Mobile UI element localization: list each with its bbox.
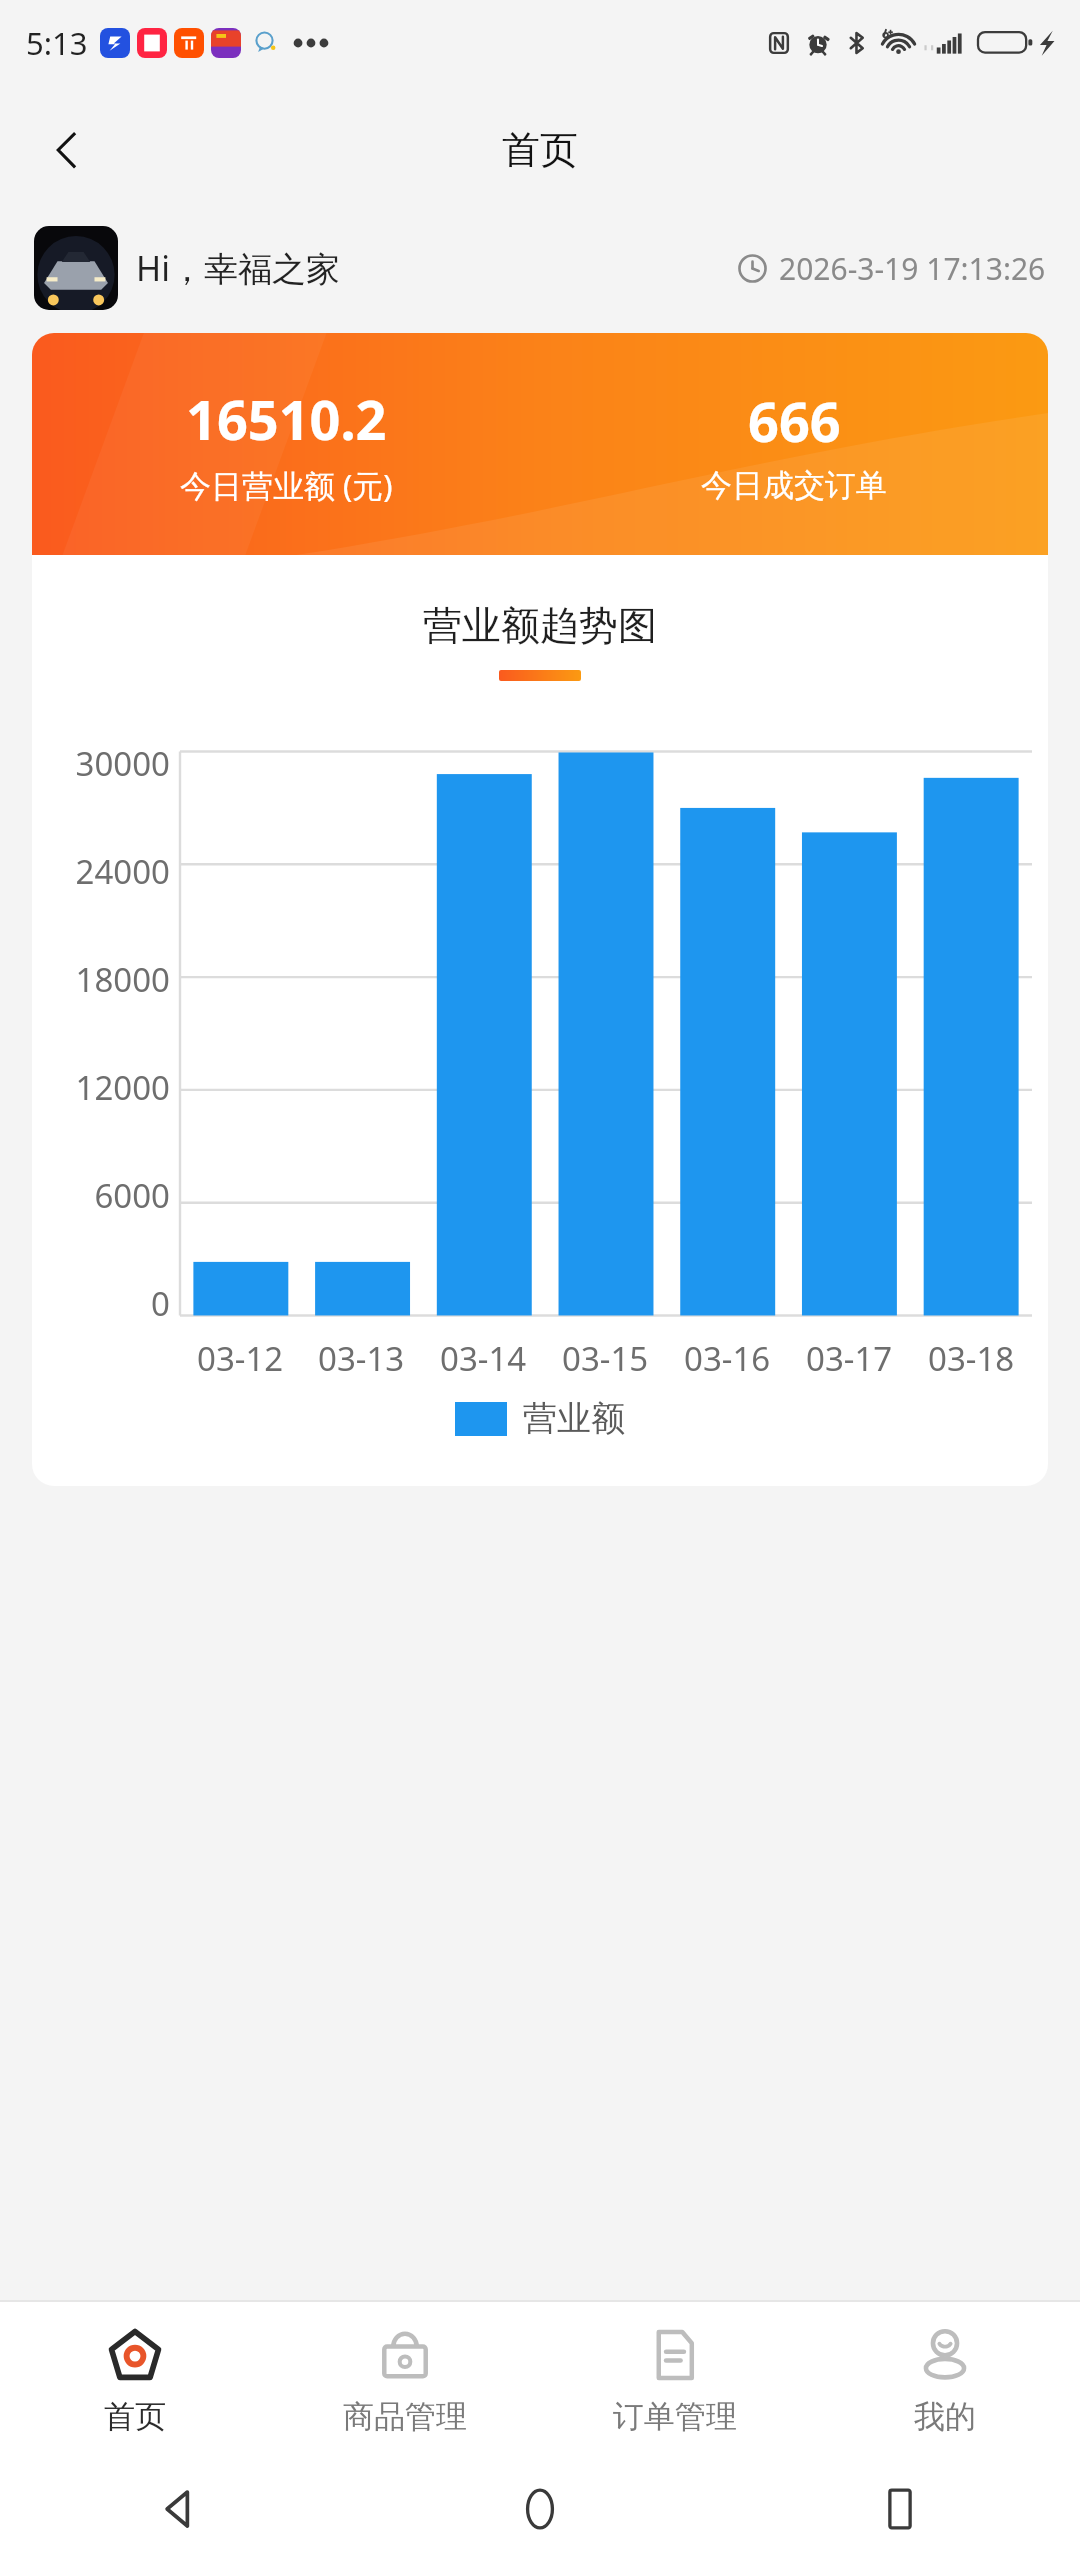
staticText: 0 <box>151 1281 170 1326</box>
staticText: 首页 <box>502 126 578 174</box>
button[interactable]: 首页 <box>0 2302 270 2460</box>
staticText: 今日成交订单 <box>701 466 887 505</box>
staticText: 首页 <box>104 2397 166 2436</box>
button[interactable]: 我的 <box>810 2302 1080 2460</box>
staticText: 03-18 <box>928 1336 1015 1381</box>
button[interactable]: 订单管理 <box>540 2302 810 2460</box>
staticText: 商品管理 <box>343 2397 467 2436</box>
staticText: 03-17 <box>806 1336 893 1381</box>
staticText: 订单管理 <box>613 2397 737 2436</box>
button[interactable]: Back <box>138 2467 222 2551</box>
staticText: 03-13 <box>318 1336 405 1381</box>
staticText: 今日营业额 (元) <box>180 464 393 506</box>
staticText: 24000 <box>75 849 170 894</box>
staticText: 营业额 <box>523 1397 625 1440</box>
staticText: Hi，幸福之家 <box>136 245 340 291</box>
button[interactable]: Home <box>498 2467 582 2551</box>
staticText: 03-15 <box>562 1336 649 1381</box>
staticText: 2026-3-19 17:13:26 <box>779 248 1046 289</box>
staticText: 16510.2 <box>186 382 387 456</box>
staticText: 我的 <box>914 2397 976 2436</box>
staticText: 5:13 <box>26 22 88 64</box>
staticText: 03-12 <box>197 1336 284 1381</box>
button[interactable]: Hi，幸福之家 <box>34 215 1046 321</box>
button[interactable]: Back <box>28 111 106 189</box>
button[interactable]: 商品管理 <box>270 2302 540 2460</box>
staticText: 12000 <box>75 1065 170 1110</box>
staticText: 03-16 <box>684 1336 771 1381</box>
staticText: 666 <box>748 384 841 458</box>
staticText: 6000 <box>94 1173 170 1218</box>
staticText: 30000 <box>75 741 170 786</box>
staticText: 18000 <box>75 957 170 1002</box>
button[interactable]: Recents <box>858 2467 942 2551</box>
staticText: 03-14 <box>440 1336 527 1381</box>
staticText: 营业额趋势图 <box>423 601 657 650</box>
